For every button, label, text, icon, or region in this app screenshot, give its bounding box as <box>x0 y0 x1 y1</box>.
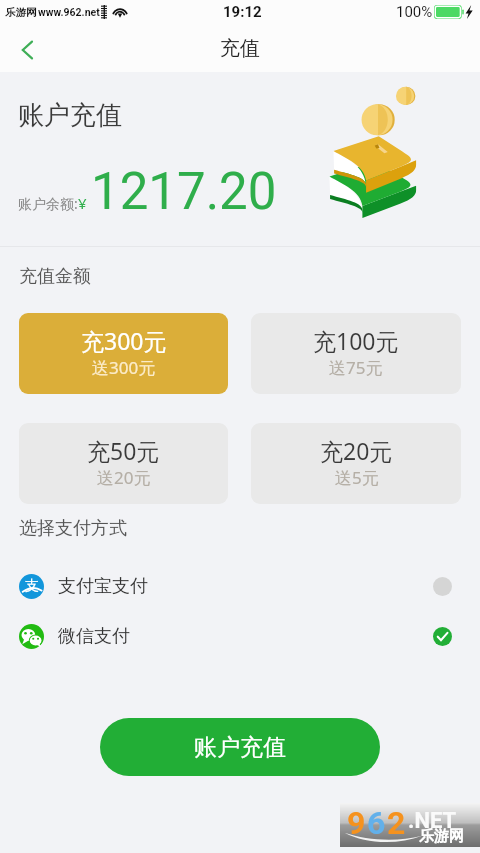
staticText: 账户充值 <box>194 733 286 762</box>
staticText: 账户余额: <box>18 194 78 213</box>
staticText: ¥ <box>78 193 87 213</box>
staticText: 送20元 <box>97 466 151 489</box>
staticText: 9 <box>347 804 366 842</box>
staticText: 乐游网 <box>419 827 464 846</box>
staticText: 账户充值 <box>18 99 122 132</box>
button[interactable]: 微信支付 <box>0 612 480 660</box>
staticText: .NET <box>408 808 457 834</box>
button[interactable]: 充100元 <box>251 313 461 394</box>
staticText: 充300元 <box>81 325 167 356</box>
button[interactable]: 账户充值 <box>100 718 380 776</box>
staticText: 充50元 <box>87 435 160 466</box>
staticText: 100% <box>396 3 433 21</box>
staticText: 充值 <box>220 36 260 61</box>
staticText: 1217.20 <box>91 162 277 222</box>
staticText: 微信支付 <box>58 625 130 648</box>
button[interactable]: 充20元 <box>251 423 461 504</box>
staticText: 送75元 <box>329 356 383 379</box>
staticText: 乐游网 <box>5 6 37 19</box>
staticText: 支付宝支付 <box>58 575 148 598</box>
staticText: 送5元 <box>335 466 379 489</box>
staticText: 充20元 <box>320 435 393 466</box>
button[interactable]: 充50元 <box>19 423 228 504</box>
staticText: 送300元 <box>92 356 156 379</box>
staticText: 充100元 <box>313 325 399 356</box>
button[interactable]: 支 <box>0 562 480 610</box>
staticText: 19:12 <box>223 3 262 21</box>
staticText: 6 <box>367 804 386 842</box>
staticText: 2 <box>387 804 406 842</box>
staticText: 选择支付方式 <box>19 517 127 540</box>
button[interactable]: Back <box>8 30 48 70</box>
staticText: 支 <box>25 577 39 595</box>
staticText: 充值金额 <box>19 265 91 288</box>
staticText: www.962.net <box>38 6 100 18</box>
button[interactable]: 充300元 <box>19 313 228 394</box>
